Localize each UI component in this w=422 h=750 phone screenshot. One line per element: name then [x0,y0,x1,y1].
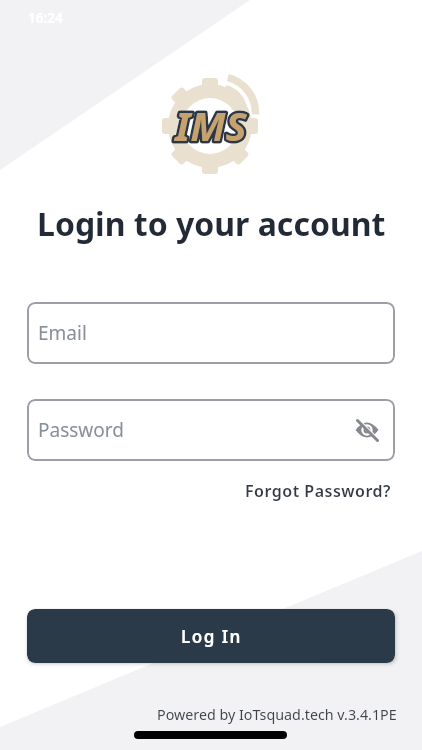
staticText: Password [38,417,124,443]
staticText: IMS [175,98,247,152]
staticText: 16:24 [28,9,63,27]
button[interactable]: Email [27,302,395,364]
staticText: IMS [175,98,247,152]
button[interactable]: Password [27,399,395,461]
staticText: Email [38,320,87,346]
staticText: Powered by IoTsquad.tech v.3.4.1PE [157,705,397,724]
button[interactable] [353,416,381,444]
staticText: Login to your account [37,202,386,246]
staticText: Log In [181,625,242,648]
button[interactable]: Log In [27,609,395,663]
button[interactable]: Forgot Password? [245,480,391,502]
